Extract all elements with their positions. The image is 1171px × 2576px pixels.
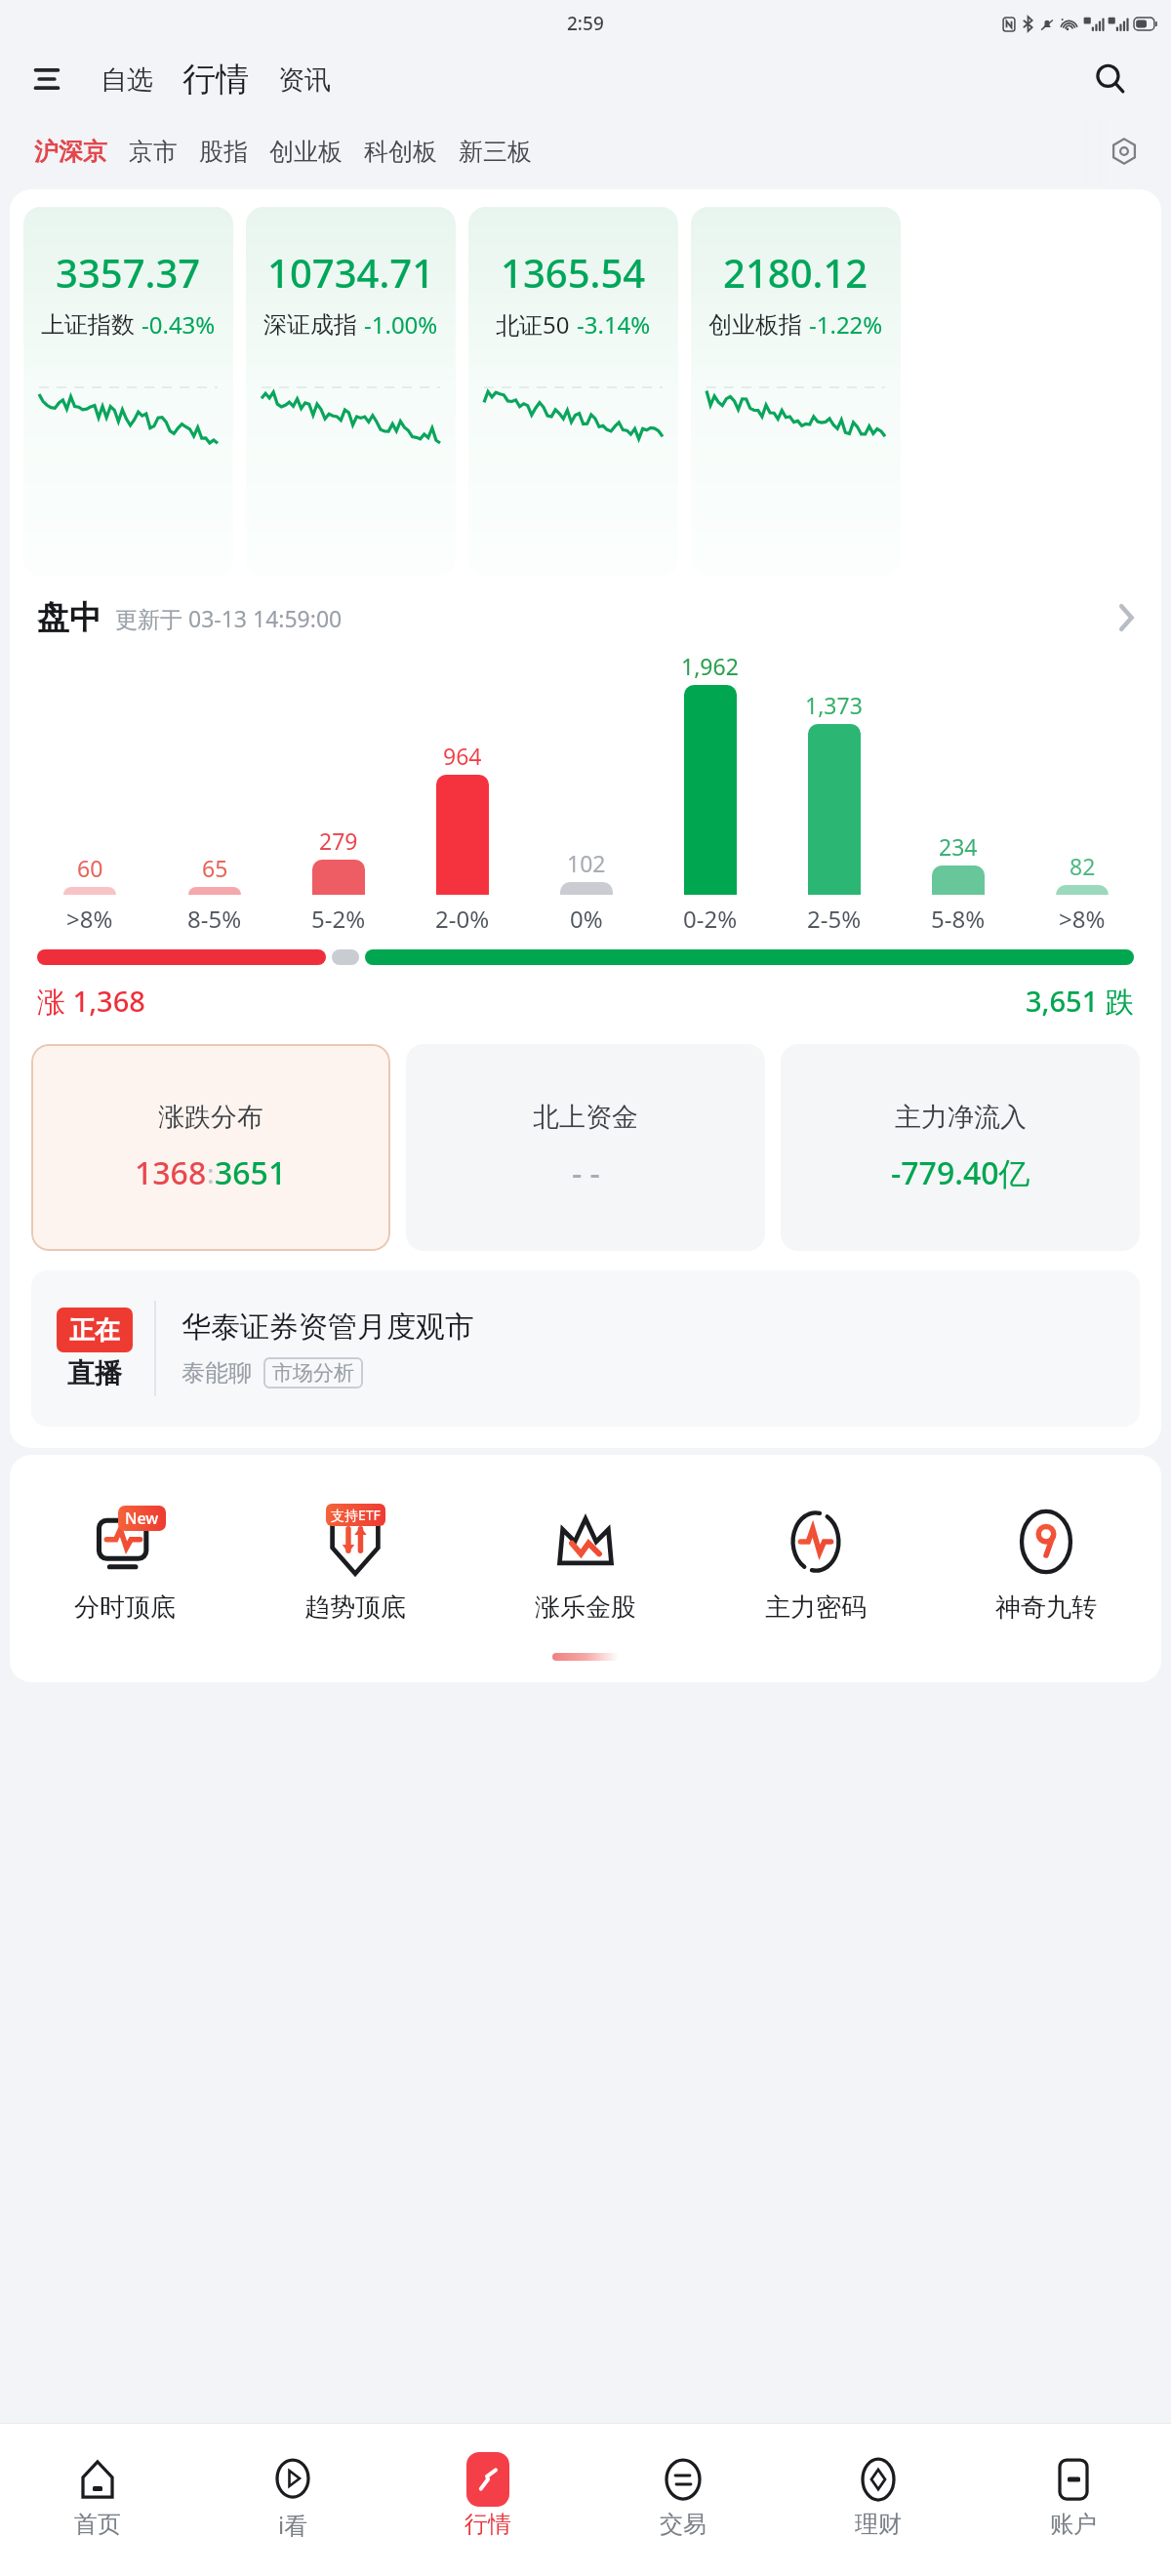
staticText: 华泰证券资管月度观市 [182,1308,474,1346]
staticText: 2-0% [435,903,490,935]
button[interactable]: 新三板 [448,129,543,175]
button[interactable]: 行情 [175,57,257,102]
staticText: : [207,1154,215,1191]
button[interactable]: 沪深京 [23,129,118,175]
staticText: i看 [278,2509,308,2541]
staticText: 2:59 [567,11,604,36]
button[interactable]: 正在 [31,1270,1140,1427]
button[interactable]: 涨乐金股 [470,1496,701,1628]
staticText: 创业板 [269,137,343,167]
staticText: 60 [77,853,103,883]
staticText: 京市 [129,137,178,167]
staticText: 964 [443,741,482,771]
staticText: >8% [1059,903,1106,935]
button[interactable]: 2180.12 [691,207,901,576]
button[interactable]: 搜索 [1085,54,1136,104]
button[interactable]: i看 [195,2446,390,2545]
staticText: 0% [570,903,603,935]
staticText: 102 [567,848,606,878]
staticText: 0-2% [683,903,738,935]
button[interactable]: 首页 [0,2447,195,2543]
button[interactable]: 菜单 [23,56,70,102]
staticText: 2-5% [807,903,862,935]
staticText: 自选 [101,63,153,97]
staticText: 行情 [464,2510,511,2539]
button[interactable]: 行情 [390,2447,585,2543]
staticText: 主力净流入 [895,1101,1027,1134]
staticText: -1.22% [809,308,883,341]
staticText: 趋势顶底 [304,1591,406,1624]
staticText: 盘中 [37,597,101,638]
staticText: - - [572,1151,600,1194]
button[interactable]: 神奇九转 [931,1496,1161,1628]
button[interactable]: 理财 [781,2447,976,2543]
staticText: 资讯 [278,63,331,97]
staticText: 账户 [1050,2510,1097,2539]
staticText: 泰能聊 [182,1358,252,1388]
button[interactable]: 涨跌分布 [31,1044,390,1251]
staticText: 3357.37 [56,246,201,299]
staticText: 创业板指 [708,310,802,340]
staticText: 涨 1,368 [37,982,145,1021]
staticText: -3.14% [577,308,651,341]
staticText: 更新于 03-13 14:59:00 [115,603,343,633]
staticText: 5-8% [931,903,986,935]
staticText: -779.40亿 [891,1151,1030,1194]
staticText: >8% [66,903,113,935]
button[interactable]: 板块设置 [1101,128,1148,175]
button[interactable]: 支持ETF [240,1496,470,1628]
button[interactable]: 交易 [585,2447,781,2543]
staticText: 涨乐金股 [535,1591,636,1624]
staticText: 1368 [135,1151,207,1194]
staticText: -0.43% [141,308,216,341]
staticText: 82 [1070,851,1096,881]
staticText: 1,962 [681,651,739,681]
staticText: 主力密码 [765,1591,867,1624]
button[interactable]: 科创板 [353,129,448,175]
staticText: 1,373 [805,690,863,720]
button[interactable]: 1365.54 [468,207,678,576]
staticText: 上证指数 [41,310,135,340]
staticText: 正在 [69,1314,120,1347]
staticText: 科创板 [364,137,437,167]
staticText: 首页 [74,2510,121,2539]
staticText: 65 [202,853,228,883]
staticText: 涨跌分布 [158,1101,263,1134]
staticText: -1.00% [364,308,438,341]
button[interactable]: 资讯 [270,58,339,102]
staticText: 分时顶底 [74,1591,176,1624]
button[interactable]: 10734.71 [246,207,456,576]
button[interactable]: 账户 [976,2447,1171,2543]
button[interactable]: 3357.37 [23,207,233,576]
staticText: 北上资金 [533,1101,638,1134]
button[interactable]: 京市 [118,129,188,175]
staticText: 5-2% [311,903,366,935]
staticText: 10734.71 [267,246,435,299]
button[interactable]: New [10,1496,240,1628]
staticText: 深证成指 [263,310,357,340]
staticText: 北证50 [496,308,570,341]
staticText: 新三板 [459,137,532,167]
button[interactable]: 盘中 [10,597,1161,638]
button[interactable]: 股指 [188,129,259,175]
button[interactable]: 创业板 [259,129,353,175]
button[interactable]: 主力净流入 [781,1044,1140,1251]
staticText: 行情 [182,59,249,101]
staticText: 交易 [660,2510,707,2539]
staticText: 神奇九转 [995,1591,1097,1624]
staticText: 3,651 跌 [1026,982,1134,1021]
staticText: 1365.54 [501,246,646,299]
staticText: 股指 [199,137,248,167]
staticText: 市场分析 [272,1360,354,1386]
button[interactable]: 北上资金 [406,1044,765,1251]
staticText: 8-5% [187,903,242,935]
staticText: 2180.12 [723,246,868,299]
staticText: 沪深京 [34,137,107,167]
staticText: 3651 [215,1151,287,1194]
staticText: 理财 [855,2510,902,2539]
button[interactable]: 自选 [93,58,161,102]
staticText: 279 [319,825,358,856]
button[interactable]: 主力密码 [701,1496,931,1628]
staticText: New [125,1508,159,1529]
staticText: 直播 [67,1356,122,1390]
